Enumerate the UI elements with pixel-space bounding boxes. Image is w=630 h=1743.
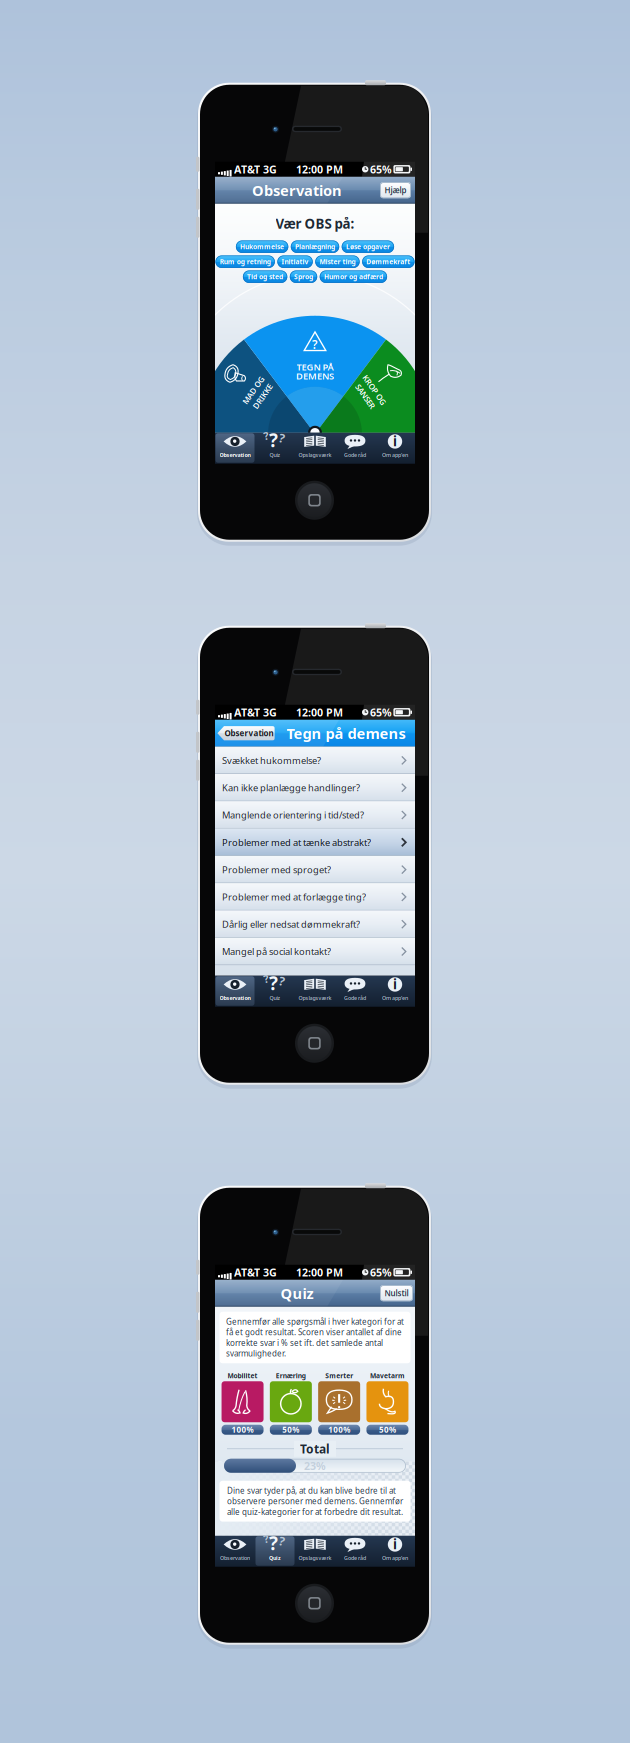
staticText: Problemer med sproget? [222, 863, 331, 876]
staticText: Gode råd [344, 1554, 366, 1562]
button[interactable]: Observation [215, 976, 255, 1007]
staticText: Dømmekraft [366, 257, 410, 266]
staticText: Mangel på social kontakt? [222, 945, 331, 958]
staticText: Om app'en [382, 451, 408, 459]
staticText: 50% [282, 1424, 299, 1435]
staticText: MAD OG [242, 382, 274, 393]
staticText: Observation [219, 994, 250, 1002]
staticText: SANSER [356, 393, 384, 404]
button[interactable]: Rum og retning [215, 255, 275, 268]
button[interactable]: i [375, 1536, 415, 1567]
button[interactable]: Opslagsværk [295, 976, 335, 1007]
staticText: AT&T [234, 162, 260, 176]
staticText: Nulstil [384, 1288, 408, 1298]
button[interactable]: i [375, 976, 415, 1007]
staticText: Observation [252, 180, 342, 200]
staticText: 3G [263, 1265, 277, 1279]
staticText: Quiz [269, 1554, 281, 1562]
button[interactable]: Løse opgaver [342, 240, 394, 253]
staticText: Total [300, 1441, 330, 1457]
staticText: Mister ting [319, 257, 355, 266]
button[interactable]: Gode råd [335, 433, 375, 464]
staticText: Sprog [294, 272, 313, 281]
button[interactable]: Nulstil [380, 1285, 413, 1301]
button[interactable]: Hjælp [380, 182, 411, 198]
button[interactable]: Opslagsværk [295, 433, 335, 464]
staticText: Opslagsværk [298, 1554, 331, 1562]
staticText: Quiz [269, 451, 280, 459]
staticText: Dine svar tyder på, at du kan blive bedr… [227, 1485, 403, 1517]
staticText: Rum og retning [220, 257, 271, 266]
button[interactable]: Kan ikke planlægge handlinger? [215, 774, 415, 801]
button[interactable]: Hukommelse [236, 240, 288, 253]
staticText: 100% [232, 1424, 254, 1435]
button[interactable]: Sprog [290, 270, 317, 283]
staticText: Humor og adfærd [324, 272, 383, 281]
staticText: 65% [370, 162, 392, 176]
staticText: Gennemfør alle spørgsmål i hver kategori… [226, 1316, 404, 1359]
staticText: ? [263, 1532, 268, 1546]
staticText: Observation [219, 451, 250, 459]
staticText: DEMENS [296, 370, 334, 382]
button[interactable]: Mavetarm [366, 1371, 408, 1435]
button[interactable]: ? [255, 433, 295, 464]
button[interactable]: Problemer med at forlægge ting? [215, 883, 415, 910]
staticText: Løse opgaver [346, 242, 390, 251]
staticText: Quiz [269, 994, 280, 1002]
staticText: ? [279, 430, 285, 446]
staticText: Planlægning [295, 242, 335, 251]
staticText: Mavetarm [370, 1371, 405, 1380]
staticText: Dårlig eller nedsat dømmekraft? [222, 918, 360, 930]
staticText: Om app'en [382, 1554, 408, 1562]
button[interactable]: Observation [215, 1536, 255, 1567]
staticText: i [393, 1535, 397, 1553]
button[interactable]: Manglende orientering i tid/sted? [215, 801, 415, 829]
button[interactable]: Initiativ [277, 255, 313, 268]
button[interactable]: ? [255, 1536, 295, 1567]
button[interactable]: Mobilitet [222, 1371, 264, 1435]
button[interactable]: Gode råd [335, 976, 375, 1007]
staticText: 65% [370, 705, 392, 719]
staticText: Vær OBS på: [275, 215, 354, 232]
staticText: Opslagsværk [298, 994, 331, 1002]
button[interactable]: Opslagsværk [295, 1536, 335, 1567]
staticText: Kan ikke planlægge handlinger? [222, 781, 360, 794]
staticText: Quiz [280, 1283, 313, 1303]
staticText: Problemer med at forlægge ting? [222, 891, 366, 903]
button[interactable]: Tid og sted [243, 270, 287, 283]
button[interactable]: i [375, 433, 415, 464]
staticText: ? [312, 336, 318, 352]
staticText: Initiativ [281, 257, 308, 266]
button[interactable]: Planlægning [291, 240, 339, 253]
button[interactable]: Problemer med at tænke abstrakt? [215, 829, 415, 856]
button[interactable]: Svækket hukommelse? [215, 747, 415, 774]
staticText: Gode råd [344, 451, 366, 459]
staticText: Ernæring [276, 1371, 306, 1380]
staticText: 12:00 PM [296, 162, 343, 176]
staticText: KROP OG [352, 382, 387, 393]
button[interactable]: Observation [215, 433, 255, 464]
button[interactable]: Smerter [318, 1371, 360, 1435]
staticText: 12:00 PM [296, 1265, 343, 1279]
staticText: 65% [370, 1265, 392, 1279]
button[interactable]: ? [255, 976, 295, 1007]
staticText: Observation [224, 728, 273, 738]
button[interactable]: Dømmekraft [362, 255, 414, 268]
staticText: i [393, 975, 397, 993]
staticText: ? [279, 1533, 285, 1549]
staticText: Manglende orientering i tid/sted? [222, 809, 364, 821]
staticText: Svækket hukommelse? [222, 754, 321, 767]
button[interactable]: Mangel på social kontakt? [215, 938, 415, 965]
staticText: Opslagsværk [298, 451, 331, 459]
button[interactable]: Humor og adfærd [320, 270, 387, 283]
staticText: 3G [263, 705, 277, 719]
button[interactable]: Ernæring [270, 1371, 312, 1435]
button[interactable]: Observation [217, 726, 275, 741]
staticText: AT&T [234, 1265, 260, 1279]
button[interactable]: Dårlig eller nedsat dømmekraft? [215, 910, 415, 938]
button[interactable]: Problemer med sproget? [215, 856, 415, 883]
staticText: Tegn på demens [286, 723, 405, 743]
button[interactable]: Mister ting [315, 255, 360, 268]
button[interactable]: Gode råd [335, 1536, 375, 1567]
staticText: ? [269, 1531, 278, 1555]
